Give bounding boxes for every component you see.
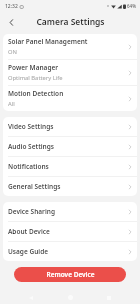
staticText: Usage Guide [8, 247, 49, 256]
staticText: Solar Panel Management [8, 37, 88, 46]
staticText: Remove Device [46, 270, 95, 279]
staticText: Camera Settings [36, 16, 105, 28]
staticText: General Settings [8, 182, 61, 191]
button[interactable]: Solar Panel Management [3, 34, 137, 60]
button[interactable]: Video Settings [3, 117, 137, 137]
staticText: 64% [127, 3, 136, 9]
staticText: Device Sharing [8, 207, 55, 216]
staticText: Notifications [8, 162, 49, 171]
button[interactable]: Remove Device [14, 267, 126, 282]
button[interactable]: Motion Detection [3, 86, 137, 111]
button[interactable]: Device Sharing [3, 202, 137, 222]
button[interactable]: Back [4, 15, 18, 29]
button[interactable]: Notifications [3, 157, 137, 177]
staticText: About Device [8, 227, 50, 236]
staticText: Audio Settings [8, 142, 55, 151]
staticText: Power Manager [8, 63, 59, 72]
button[interactable]: Power Manager [3, 60, 137, 86]
button[interactable]: Usage Guide [3, 242, 137, 261]
button[interactable]: Audio Settings [3, 137, 137, 157]
staticText: All [8, 100, 15, 108]
button[interactable]: General Settings [3, 177, 137, 196]
staticText: Optimal Battery Life [8, 74, 63, 82]
staticText: ON [8, 48, 17, 56]
staticText: 12:32 [5, 3, 18, 10]
staticText: Motion Detection [8, 89, 64, 98]
button[interactable]: About Device [3, 222, 137, 242]
staticText: Video Settings [8, 122, 54, 131]
